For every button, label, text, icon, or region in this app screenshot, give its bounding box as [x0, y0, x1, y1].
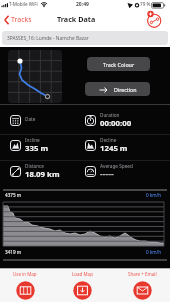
- staticText: Tracks: [11, 15, 32, 25]
- staticText: Average Speed: [100, 163, 133, 169]
- button[interactable]: Track Colour: [87, 57, 150, 71]
- staticText: 4375 m: [5, 192, 22, 198]
- staticText: Use in Map: [13, 271, 37, 277]
- staticText: Direction: [114, 86, 137, 93]
- staticText: 3PASSES_16: Lumde - Namche Bazar: [7, 35, 89, 42]
- button[interactable]: Tracks: [2, 12, 36, 28]
- staticText: Duration: [100, 112, 120, 118]
- staticText: 1245 m: [100, 143, 128, 154]
- staticText: 0 km/h: [146, 249, 162, 255]
- staticText: 20:49: [76, 1, 89, 8]
- staticText: Track Colour: [103, 61, 135, 68]
- staticText: Distance: [25, 163, 44, 169]
- button[interactable]: [143, 7, 165, 29]
- button[interactable]: Share + Email: [116, 268, 168, 302]
- staticText: 3419 m: [5, 249, 22, 255]
- staticText: T-Mobile WiFi: [9, 1, 38, 7]
- staticText: Incline: [25, 137, 40, 143]
- staticText: Date: [25, 116, 36, 122]
- button[interactable]: Load Map: [56, 268, 108, 302]
- button[interactable]: Use in Map: [0, 268, 51, 302]
- staticText: 0 km/h: [146, 192, 162, 198]
- staticText: 00:00:00: [100, 118, 132, 129]
- staticText: 79 %: [140, 1, 151, 7]
- button[interactable]: Direction: [85, 82, 150, 96]
- staticText: Share + Email: [128, 271, 157, 277]
- staticText: -----: [100, 168, 114, 180]
- staticText: Track Data: [57, 14, 96, 24]
- staticText: 18.09 km: [25, 169, 60, 180]
- staticText: Decline: [100, 137, 117, 143]
- staticText: 335 m: [25, 143, 49, 154]
- staticText: Load Map: [72, 271, 93, 277]
